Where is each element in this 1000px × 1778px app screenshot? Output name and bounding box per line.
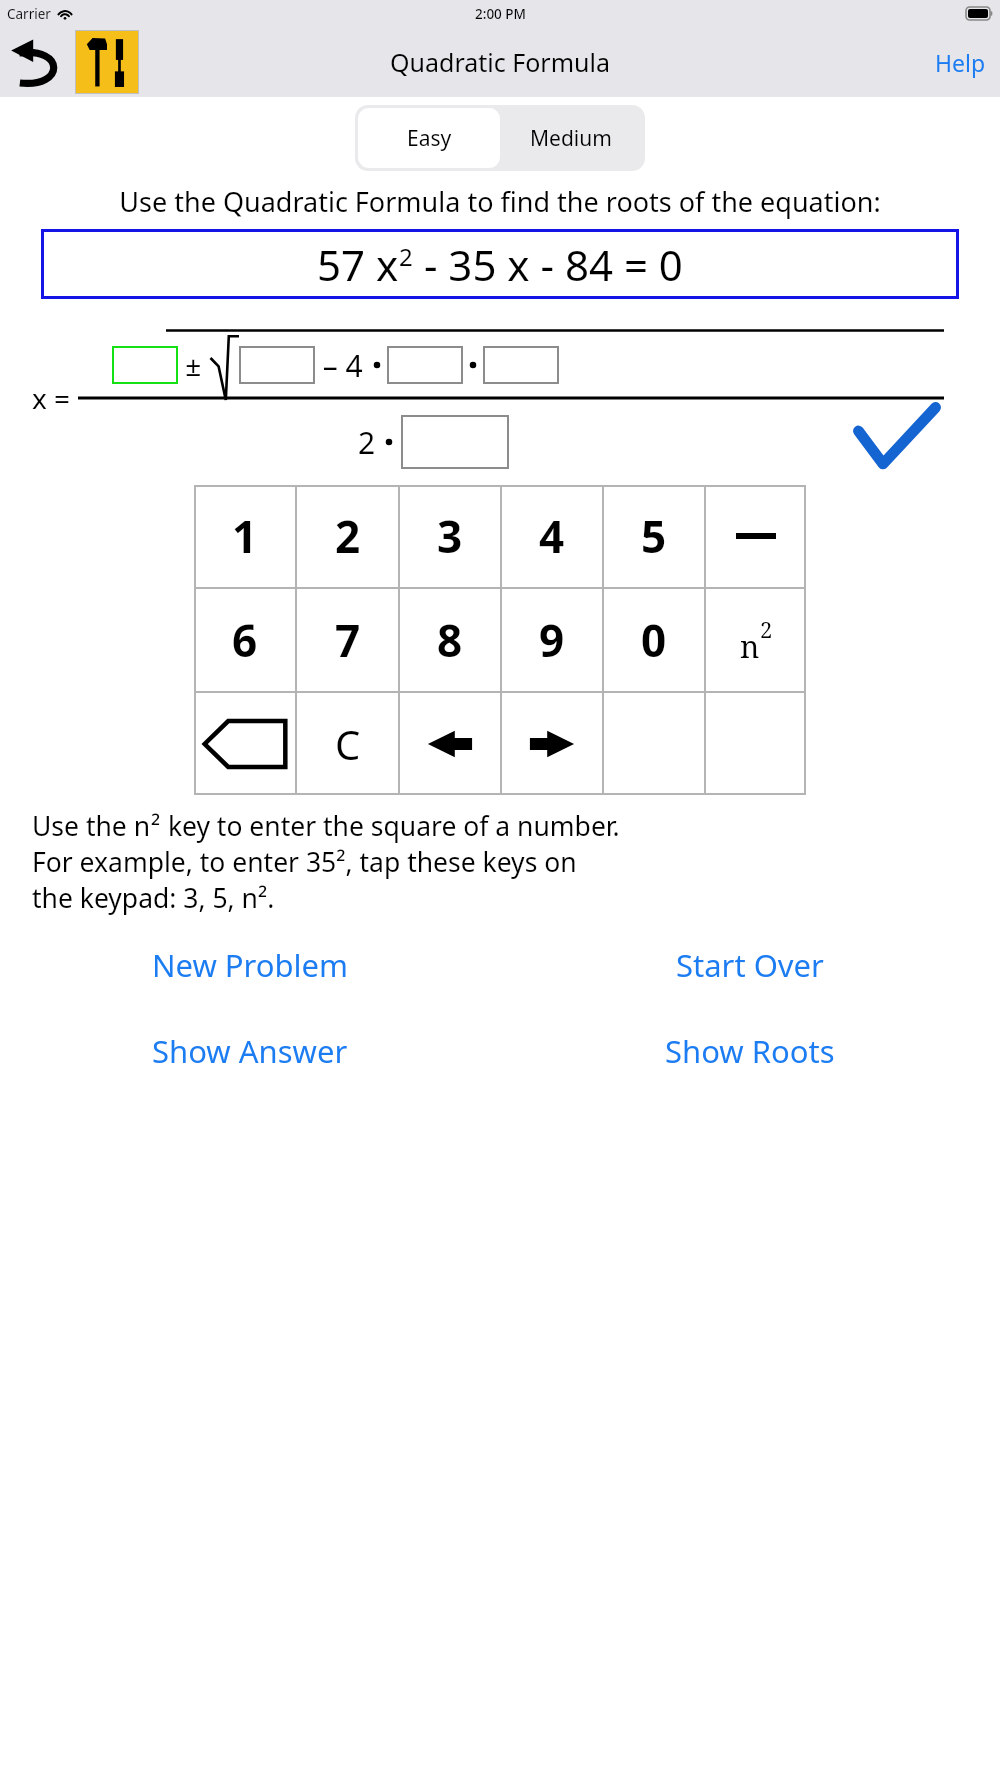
button[interactable]: C (297, 693, 398, 795)
button[interactable]: Back (6, 33, 72, 91)
button[interactable]: Delete (194, 693, 295, 795)
staticText: 2:00 PM (475, 5, 526, 23)
staticText: C (335, 717, 361, 771)
staticText: 8 (437, 610, 463, 670)
button[interactable] (604, 693, 704, 795)
staticText: 0 (641, 610, 667, 670)
staticText: Start Over (676, 944, 824, 986)
button[interactable]: 8 (400, 589, 500, 691)
button[interactable]: 2 (297, 485, 398, 587)
button[interactable]: Answer slot (401, 415, 509, 469)
staticText: Carrier (7, 5, 51, 23)
staticText: ± (178, 346, 209, 384)
staticText: the keypad: 3, 5, n². (32, 880, 275, 916)
staticText: 57 x (317, 236, 399, 293)
staticText: - 35 x - 84 = 0 (413, 236, 683, 293)
button[interactable]: Answer slot (387, 346, 463, 384)
button[interactable]: n (706, 589, 806, 691)
staticText: ² (151, 808, 161, 844)
staticText: x = (32, 379, 71, 417)
staticText: New Problem (152, 944, 349, 986)
button[interactable] (706, 693, 806, 795)
staticText: 7 (335, 610, 361, 670)
staticText: 2 (335, 506, 361, 566)
button[interactable]: Start Over (658, 934, 842, 996)
staticText: Quadratic Formula (390, 45, 610, 79)
button[interactable]: Answer slot (239, 346, 315, 384)
staticText: Show Roots (665, 1030, 835, 1072)
staticText: 9 (539, 610, 565, 670)
button[interactable]: Move right (502, 693, 602, 795)
staticText: – 4 (315, 345, 371, 386)
button[interactable]: 7 (297, 589, 398, 691)
staticText: 4 (539, 506, 565, 566)
button[interactable]: Show Roots (647, 1020, 853, 1082)
button[interactable]: Easy (358, 108, 500, 168)
button[interactable]: Answer slot (112, 346, 178, 384)
button[interactable]: 3 (400, 485, 500, 587)
button[interactable]: Tools (75, 30, 139, 94)
button[interactable]: 9 (502, 589, 602, 691)
staticText: 2 (399, 240, 413, 273)
staticText: n (740, 626, 760, 667)
staticText: Use the n (32, 808, 151, 844)
staticText: Easy (407, 124, 452, 153)
button[interactable]: Answer slot (483, 346, 559, 384)
button[interactable]: 6 (194, 589, 295, 691)
button[interactable]: Medium (500, 108, 642, 168)
button[interactable]: 4 (502, 485, 602, 587)
button[interactable]: 5 (604, 485, 704, 587)
button[interactable]: Show Answer (134, 1020, 366, 1082)
staticText: key to enter the square of a number. (161, 808, 620, 844)
button[interactable]: New Problem (134, 934, 367, 996)
staticText: 5 (641, 506, 667, 566)
staticText: For example, to enter 35², tap these key… (32, 844, 577, 880)
staticText: 6 (232, 610, 258, 670)
staticText: Use the Quadratic Formula to find the ro… (44, 183, 956, 220)
button[interactable]: Help (921, 37, 1000, 88)
button[interactable]: 0 (604, 589, 704, 691)
staticText: Medium (530, 124, 612, 153)
button[interactable]: Move left (400, 693, 500, 795)
staticText: Help (935, 47, 986, 78)
staticText: 2 (760, 614, 773, 644)
staticText: 1 (232, 506, 258, 566)
button[interactable] (706, 485, 806, 587)
staticText: 2 (358, 422, 383, 463)
button[interactable]: 1 (194, 485, 295, 587)
staticText: 3 (437, 506, 463, 566)
staticText: Show Answer (152, 1030, 348, 1072)
